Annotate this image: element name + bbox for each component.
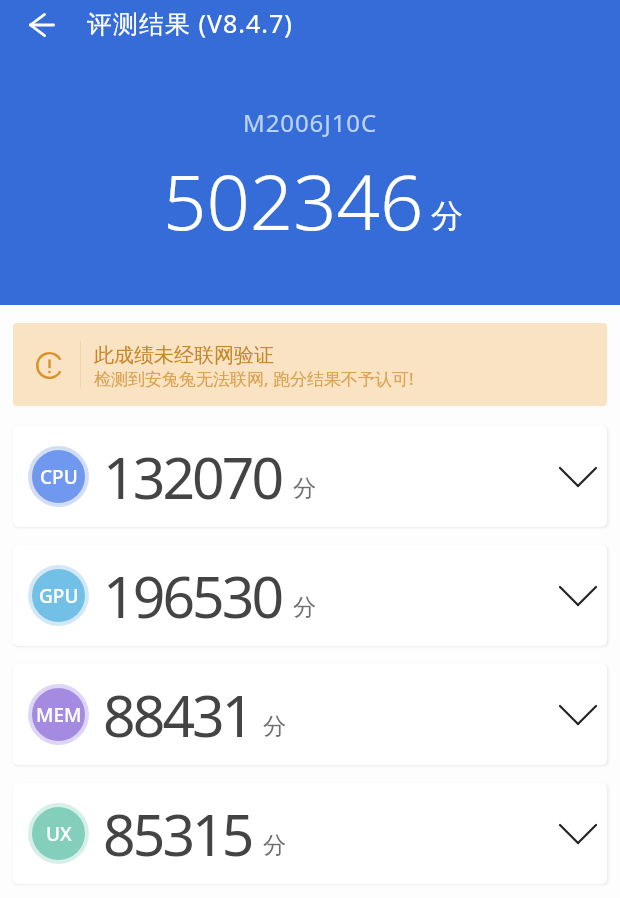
button[interactable]: Expand <box>550 449 606 505</box>
button[interactable]: GPU <box>13 545 607 646</box>
staticText: 196530 <box>103 557 282 635</box>
button[interactable]: MEM <box>13 664 607 765</box>
staticText: 分 <box>293 474 316 503</box>
button[interactable]: Expand <box>550 806 606 862</box>
staticText: 分 <box>263 831 286 860</box>
button[interactable]: Expand <box>550 687 606 743</box>
staticText: 分 <box>293 593 316 622</box>
staticText: 132070 <box>103 438 282 516</box>
button[interactable]: 此成绩未经联网验证 <box>13 323 607 406</box>
staticText: 502346 <box>163 149 424 253</box>
staticText: 分 <box>263 712 286 741</box>
staticText: 分 <box>431 196 463 236</box>
button[interactable]: Back <box>14 0 70 53</box>
staticText: UX <box>46 821 72 847</box>
staticText: M2006J10C <box>243 106 377 139</box>
staticText: 检测到安兔兔无法联网, 跑分结果不予认可! <box>94 367 414 390</box>
staticText: 此成绩未经联网验证 <box>94 343 274 368</box>
staticText: 评测结果 (V8.4.7) <box>87 6 293 40</box>
button[interactable]: CPU <box>13 426 607 527</box>
button[interactable]: Expand <box>550 568 606 624</box>
staticText: CPU <box>40 464 78 490</box>
staticText: 85315 <box>103 795 252 873</box>
staticText: GPU <box>39 583 79 609</box>
staticText: 88431 <box>103 676 252 754</box>
button[interactable]: UX <box>13 783 607 884</box>
staticText: MEM <box>36 702 82 728</box>
